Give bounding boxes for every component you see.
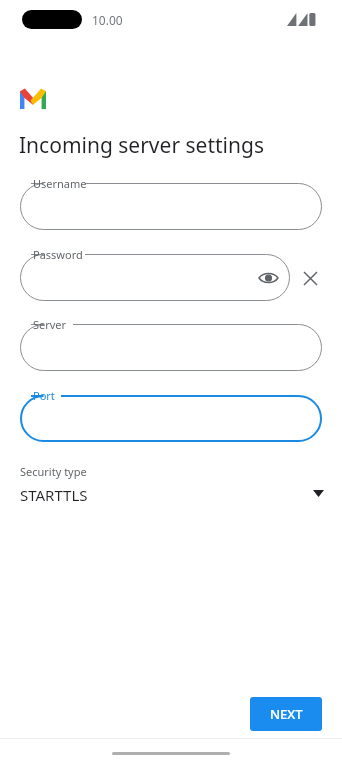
- button[interactable]: Password: [20, 254, 290, 301]
- staticText: NEXT: [270, 705, 303, 723]
- staticText: Server: [33, 317, 67, 332]
- button[interactable]: Security type: [12, 461, 330, 513]
- button[interactable]: NEXT: [250, 697, 322, 731]
- staticText: Incoming server settings: [19, 131, 264, 160]
- staticText: Password: [33, 247, 83, 262]
- button[interactable]: Show password: [256, 266, 280, 290]
- staticText: Port: [33, 388, 55, 403]
- button[interactable]: Clear password: [298, 266, 322, 290]
- staticText: STARTTLS: [20, 485, 88, 505]
- staticText: Security type: [20, 464, 87, 479]
- staticText: Username: [33, 176, 87, 191]
- button[interactable]: Port: [20, 395, 322, 442]
- staticText: 10.00: [92, 12, 123, 28]
- button[interactable]: Username: [20, 183, 322, 230]
- button[interactable]: Server: [20, 324, 322, 371]
